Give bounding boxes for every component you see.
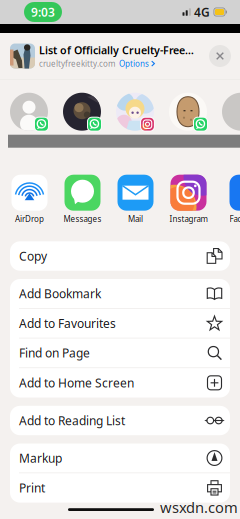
staticText: Options: [119, 58, 149, 69]
button[interactable]: Copy: [10, 241, 230, 271]
button[interactable]: Add Bookmark: [10, 279, 230, 309]
button[interactable]: Find on Page: [10, 338, 230, 368]
button[interactable]: Add to Home Screen: [10, 368, 230, 397]
button[interactable]: Share with contact: [169, 93, 207, 131]
staticText: Instagram: [169, 214, 207, 224]
button[interactable]: Add to Favourites: [10, 309, 230, 338]
staticText: List of Officially Cruelty-Free Brand…: [39, 43, 196, 57]
staticText: 9:03: [31, 4, 55, 20]
staticText: Add to Favourites: [19, 315, 116, 331]
staticText: AirDrop: [15, 214, 44, 224]
staticText: Find on Page: [19, 345, 90, 361]
button[interactable]: Add to Reading List: [10, 406, 230, 435]
button[interactable]: Markup: [10, 443, 230, 473]
button[interactable]: Instagram: [165, 175, 212, 224]
button[interactable]: f: [224, 175, 240, 224]
staticText: 4G: [194, 4, 210, 20]
button[interactable]: Print: [10, 473, 230, 503]
button[interactable]: Options: [119, 58, 155, 69]
staticText: Markup: [19, 450, 62, 466]
staticText: wsxdn.com: [160, 497, 238, 517]
button[interactable]: AirDrop: [6, 175, 53, 224]
button[interactable]: Mail: [112, 175, 159, 224]
staticText: crueltyfreekitty.com: [39, 58, 115, 69]
staticText: Add Bookmark: [19, 286, 101, 301]
staticText: Messages: [63, 214, 101, 224]
button[interactable]: Close: [206, 42, 234, 70]
staticText: Copy: [19, 248, 47, 264]
staticText: Print: [19, 480, 45, 496]
staticText: Mail: [128, 214, 143, 224]
button[interactable]: Share with contact: [116, 93, 154, 131]
button[interactable]: Share with contact: [10, 93, 48, 131]
staticText: Add to Home Screen: [19, 375, 134, 391]
staticText: Facebook: [229, 214, 240, 224]
button[interactable]: Share with contact: [63, 93, 101, 131]
button[interactable]: Messages: [59, 175, 106, 224]
staticText: Add to Reading List: [19, 413, 125, 428]
